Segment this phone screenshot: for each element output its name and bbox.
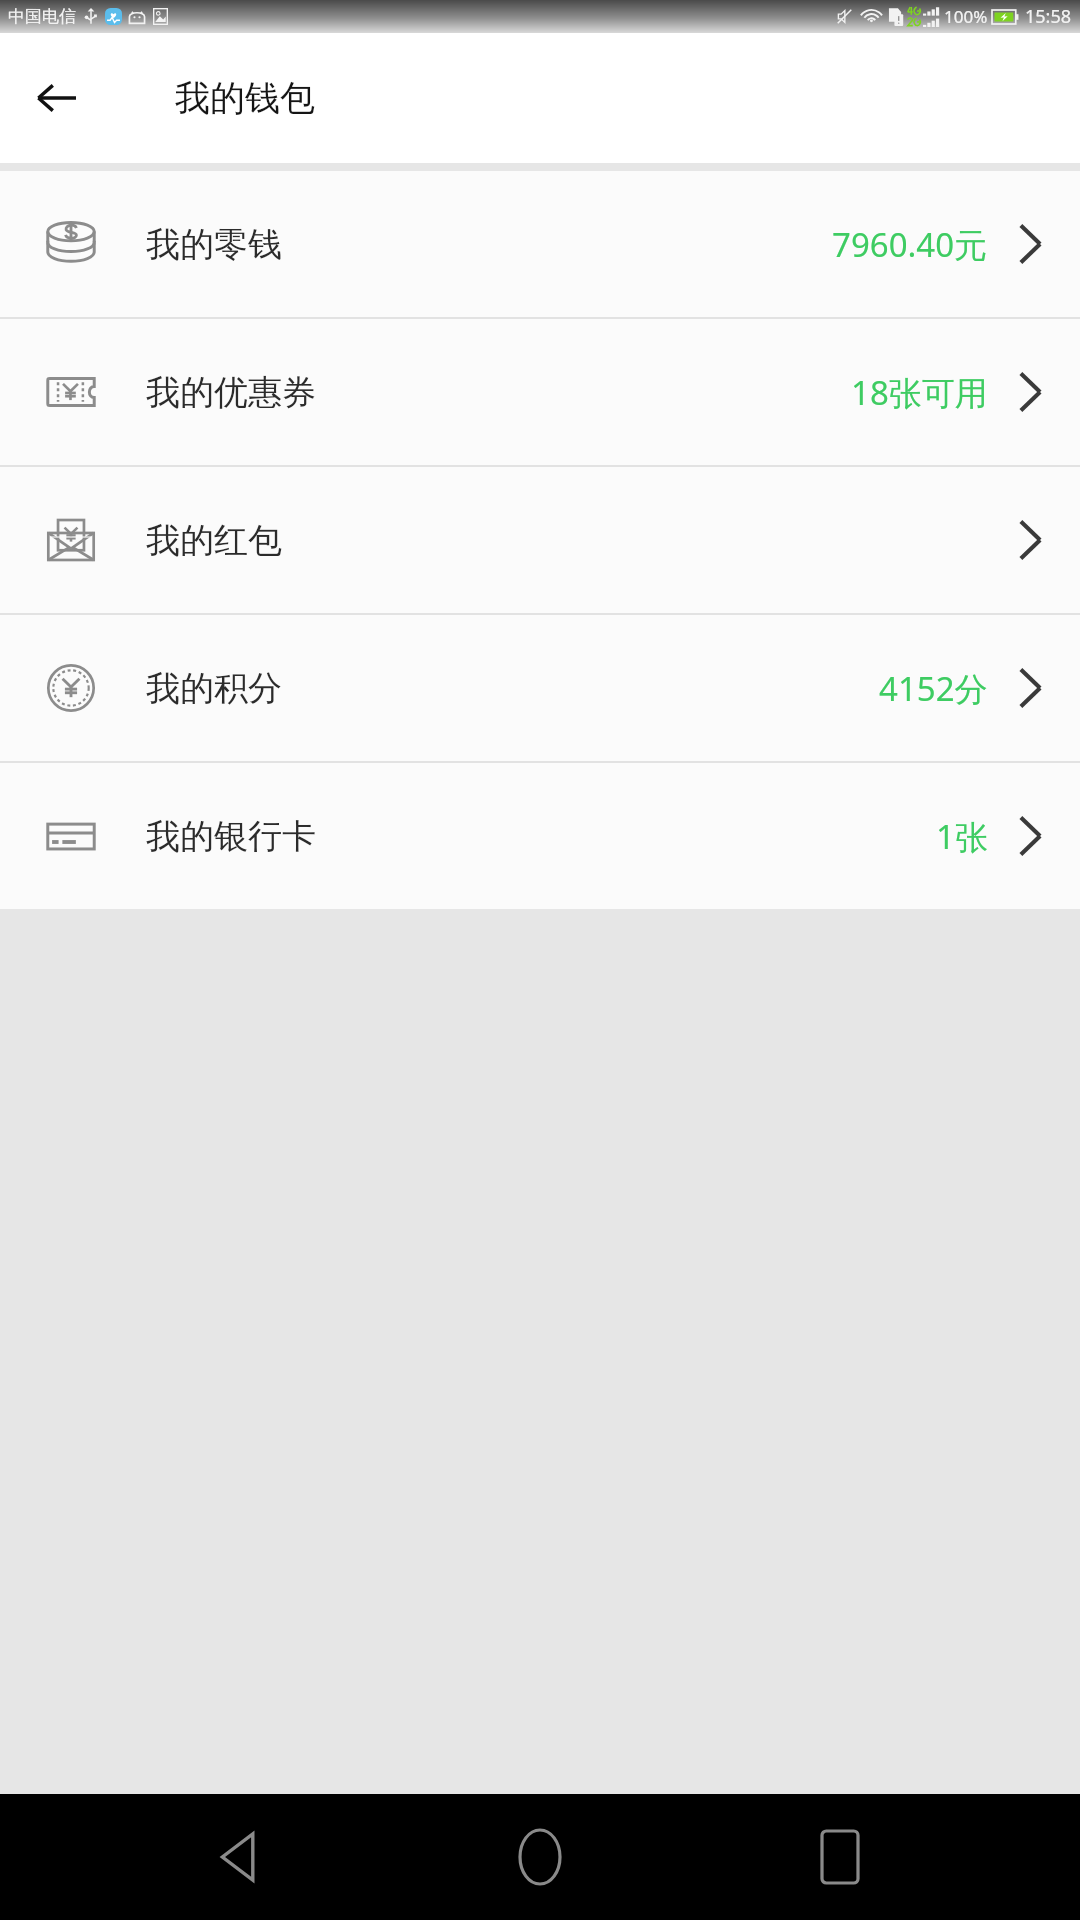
staticText: 我的零钱 xyxy=(146,223,282,266)
button[interactable]: 我的积分 xyxy=(0,615,1080,761)
button[interactable]: 我的红包 xyxy=(0,467,1080,613)
button[interactable]: 我的银行卡 xyxy=(0,763,1080,909)
staticText: 100% xyxy=(944,5,988,28)
staticText: 15:58 xyxy=(1025,4,1072,29)
staticText: 我的红包 xyxy=(146,519,282,562)
staticText: 我的优惠券 xyxy=(146,371,316,414)
staticText: 中国电信 xyxy=(8,6,76,27)
staticText: 我的积分 xyxy=(146,667,282,710)
button[interactable]: Home xyxy=(480,1797,600,1917)
staticText: 我的钱包 xyxy=(175,76,315,120)
staticText: 1张 xyxy=(936,814,988,859)
staticText: 4152分 xyxy=(879,666,988,711)
staticText: 7960.40元 xyxy=(832,222,988,267)
button[interactable]: Recent apps xyxy=(780,1797,900,1917)
button[interactable]: 我的优惠券 xyxy=(0,319,1080,465)
staticText: 我的银行卡 xyxy=(146,815,316,858)
button[interactable]: Back xyxy=(180,1797,300,1917)
staticText: 18张可用 xyxy=(851,370,988,415)
button[interactable]: Back xyxy=(28,70,84,126)
button[interactable]: 我的零钱 xyxy=(0,171,1080,317)
